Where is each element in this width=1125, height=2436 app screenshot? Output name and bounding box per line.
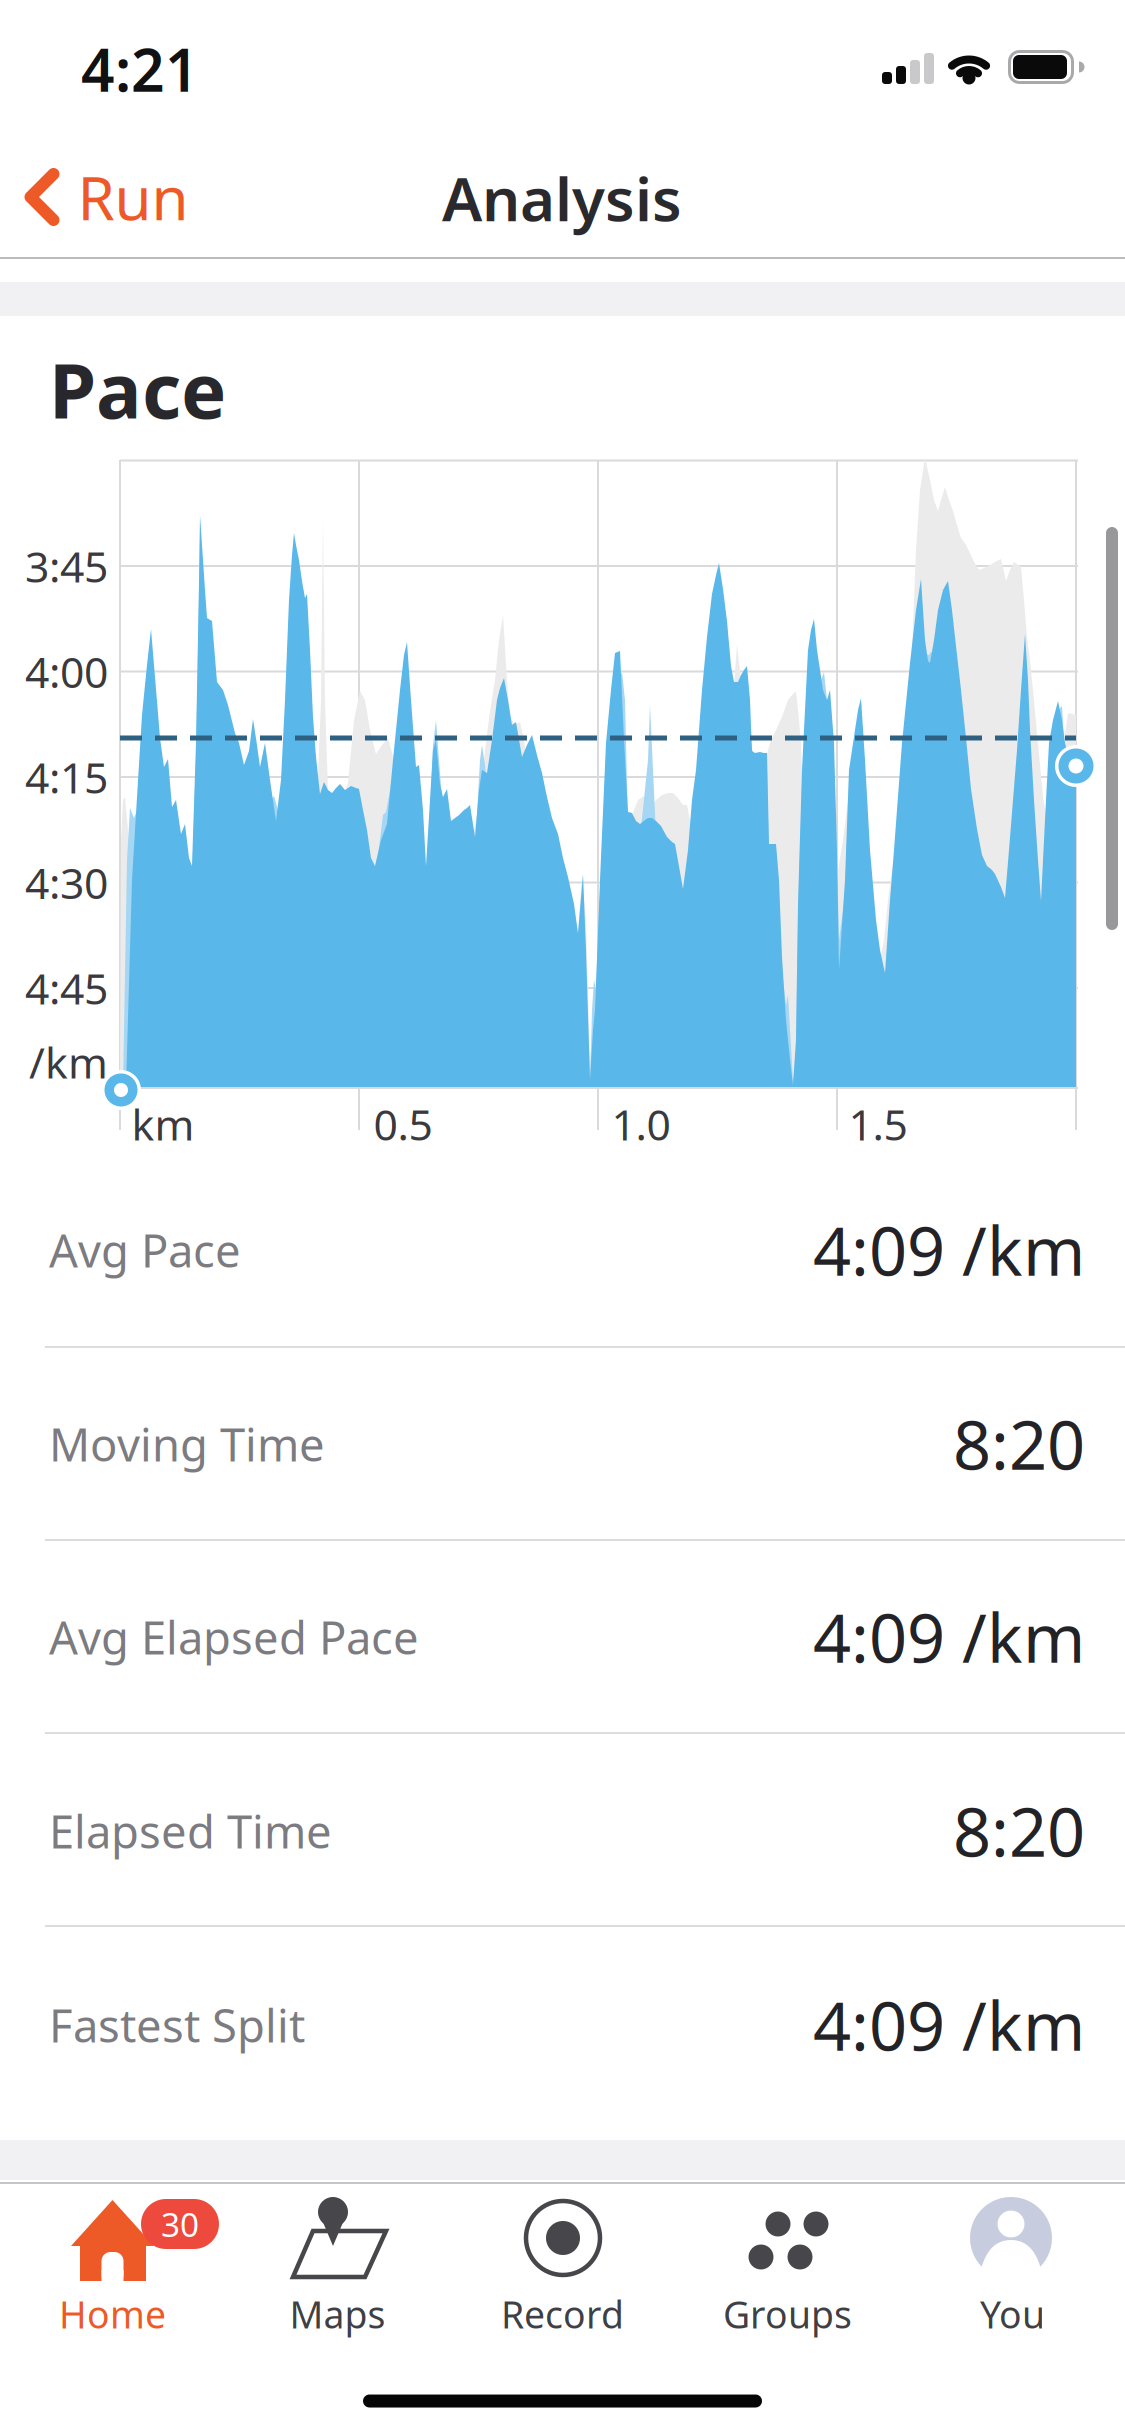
staticText: 4:21 <box>81 30 199 108</box>
staticText: 4:15 <box>25 749 108 805</box>
button[interactable]: Maps <box>225 2186 450 2336</box>
staticText: 4:45 <box>25 960 108 1016</box>
button[interactable]: 30 <box>0 2186 225 2336</box>
staticText: 0.5 <box>373 1096 432 1152</box>
staticText: 1.5 <box>848 1096 907 1152</box>
staticText: Moving Time <box>49 1414 325 1474</box>
staticText: 8:20 <box>953 1787 1085 1875</box>
staticText: Avg Pace <box>49 1220 241 1280</box>
staticText: Analysis <box>442 158 682 238</box>
staticText: Home <box>59 2289 166 2339</box>
staticText: You <box>980 2289 1045 2339</box>
staticText: Elapsed Time <box>49 1801 332 1861</box>
staticText: Pace <box>49 338 226 439</box>
staticText: 4:00 <box>25 643 108 700</box>
staticText: 3:45 <box>25 538 108 594</box>
staticText: Record <box>501 2289 624 2339</box>
button[interactable]: Record <box>450 2186 675 2336</box>
button[interactable]: Run <box>23 157 188 237</box>
staticText: Run <box>77 157 188 237</box>
button[interactable]: Groups <box>675 2186 900 2336</box>
staticText: Maps <box>289 2289 385 2339</box>
staticText: 1.0 <box>611 1096 670 1152</box>
staticText: 30 <box>161 2202 199 2246</box>
staticText: km <box>131 1096 194 1152</box>
button[interactable]: You <box>900 2186 1125 2336</box>
staticText: /km <box>29 1034 108 1090</box>
staticText: Groups <box>723 2289 852 2339</box>
staticText: Avg Elapsed Pace <box>49 1607 419 1667</box>
staticText: 4:09 /km <box>813 1593 1085 1681</box>
staticText: 8:20 <box>953 1400 1085 1488</box>
staticText: 4:30 <box>25 854 108 911</box>
staticText: 4:09 /km <box>813 1981 1085 2069</box>
staticText: 4:09 /km <box>813 1206 1085 1294</box>
staticText: Fastest Split <box>49 1995 305 2055</box>
